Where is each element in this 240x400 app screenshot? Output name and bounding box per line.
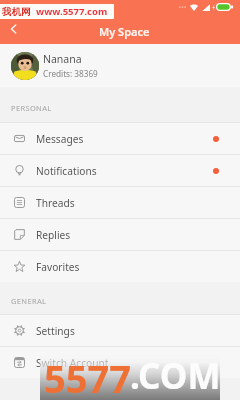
staticText: .COM <box>130 352 221 399</box>
button[interactable]: Back <box>0 15 28 43</box>
button[interactable]: Favorites <box>0 250 240 282</box>
staticText: GENERAL <box>11 296 47 306</box>
button[interactable]: Settings <box>0 314 240 346</box>
staticText: www.5577.com <box>36 5 108 18</box>
staticText: My Space <box>99 24 150 39</box>
button[interactable]: Nanana <box>0 44 240 87</box>
staticText: PERSONAL <box>11 103 52 113</box>
button[interactable]: Notifications <box>0 154 240 186</box>
staticText: 5577 <box>44 352 131 399</box>
staticText: Notifications <box>36 164 97 178</box>
staticText: Switch Account <box>36 356 109 370</box>
staticText: Threads <box>36 196 75 210</box>
button[interactable]: Messages <box>0 122 240 154</box>
staticText: Messages <box>36 132 84 146</box>
button[interactable]: Replies <box>0 218 240 250</box>
staticText: Favorites <box>36 260 80 274</box>
staticText: Replies <box>36 228 71 242</box>
button[interactable]: Switch Account <box>0 346 240 378</box>
staticText: Nanana <box>43 52 82 66</box>
staticText: Credits: 38369 <box>43 68 98 79</box>
staticText: Settings <box>36 324 75 338</box>
staticText: 我机网 <box>2 6 31 18</box>
button[interactable]: Threads <box>0 186 240 218</box>
